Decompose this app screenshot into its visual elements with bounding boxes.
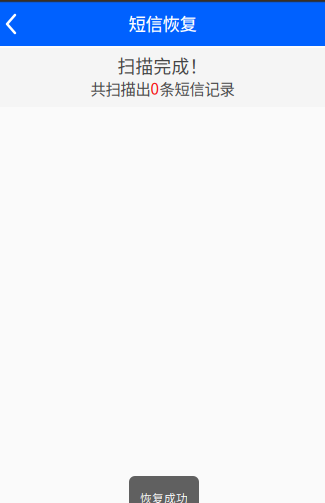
staticText: 共扫描出: [90, 77, 150, 99]
staticText: 短信恢复: [128, 10, 196, 36]
staticText: 扫描完成！: [117, 53, 207, 78]
staticText: 条短信记录: [159, 77, 234, 99]
staticText: 恢复成功: [140, 490, 188, 503]
staticText: 0: [150, 77, 159, 99]
button[interactable]: Back: [0, 0, 22, 46]
